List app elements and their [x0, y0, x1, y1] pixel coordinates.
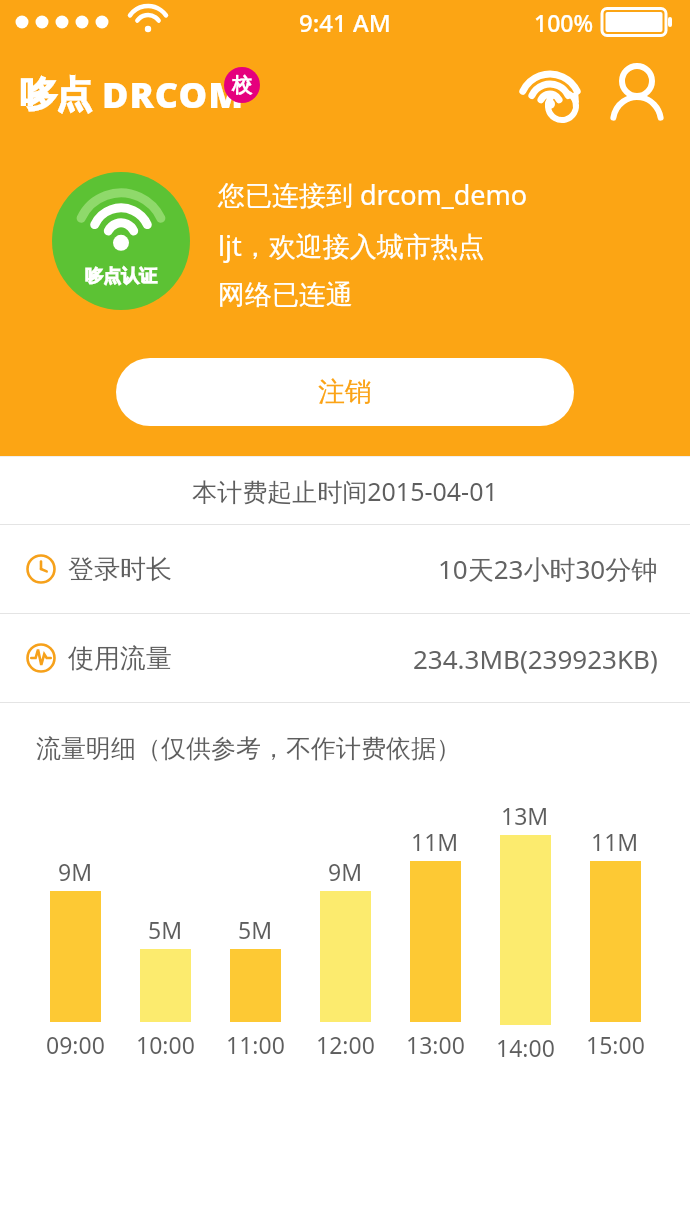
staticText: 本计费起止时间2015-04-01 [0, 474, 690, 508]
staticText: 5M [238, 914, 273, 945]
button[interactable]: 登录时长 [0, 525, 690, 613]
staticText: 流量明细（仅供参考，不作计费依据） [36, 733, 461, 764]
staticText: 15:00 [586, 1029, 645, 1060]
staticText: 哆点 [20, 72, 92, 117]
staticText: 11:00 [226, 1029, 285, 1060]
staticText: 9M [58, 856, 93, 887]
staticText: 10:00 [136, 1029, 195, 1060]
staticText: 网络已连通 [218, 278, 353, 312]
staticText: 11M [411, 826, 459, 857]
staticText: ljt，欢迎接入城市热点 [218, 227, 485, 264]
staticText: 使用流量 [68, 642, 172, 675]
button[interactable]: 注销 [116, 358, 574, 426]
staticText: 10天23小时30分钟 [438, 551, 658, 587]
staticText: 5M [148, 914, 183, 945]
staticText: 100% [534, 7, 594, 38]
staticText: 9:41 AM [299, 6, 391, 39]
button[interactable]: Refresh connection [518, 62, 582, 126]
staticText: 注销 [318, 375, 372, 409]
staticText: 13:00 [406, 1029, 465, 1060]
button[interactable]: 使用流量 [0, 614, 690, 702]
staticText: 12:00 [316, 1029, 375, 1060]
staticText: 您已连接到 drcom_demo [218, 176, 528, 213]
button[interactable]: Account [606, 63, 668, 125]
staticText: 234.3MB(239923KB) [413, 641, 658, 676]
staticText: 14:00 [496, 1032, 555, 1060]
staticText: 9M [328, 856, 363, 887]
staticText: 哆点认证 [85, 265, 157, 288]
staticText: 11M [591, 826, 639, 857]
staticText: 13M [501, 800, 549, 831]
staticText: 登录时长 [68, 553, 172, 586]
staticText: DRCOM [102, 70, 244, 119]
staticText: 09:00 [46, 1029, 105, 1060]
staticText: 校 [232, 73, 252, 98]
